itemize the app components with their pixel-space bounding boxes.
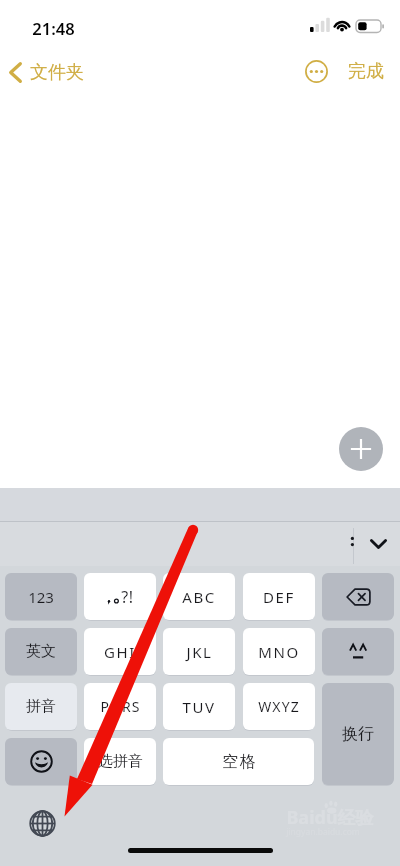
button[interactable]: PQRS <box>84 683 156 730</box>
button[interactable]: 完成 <box>348 60 384 83</box>
button[interactable]: TUV <box>163 683 235 730</box>
staticText: WXYZ <box>258 697 300 716</box>
staticText: 123 <box>28 587 54 607</box>
staticText: Baidu经验 <box>286 805 374 830</box>
staticText: DEF <box>263 587 295 607</box>
button[interactable]: WXYZ <box>243 683 315 730</box>
button[interactable]: 英文 <box>5 628 77 675</box>
button[interactable]: GHI <box>84 628 156 675</box>
button[interactable]: 123 <box>5 573 77 620</box>
button[interactable]: 选拼音 <box>84 738 156 785</box>
button[interactable]: Hide keyboard <box>358 526 398 562</box>
staticText: TUV <box>182 697 216 717</box>
button[interactable]: ?! <box>84 573 156 620</box>
staticText: 完成 <box>348 60 384 83</box>
button[interactable]: ABC <box>163 573 235 620</box>
button[interactable]: 文件夹 <box>9 52 84 92</box>
staticText: 文件夹 <box>30 61 84 84</box>
staticText: ABC <box>182 587 216 607</box>
button[interactable]: More options <box>299 54 334 89</box>
staticText: MNO <box>258 642 300 662</box>
staticText: 拼音 <box>26 697 56 716</box>
button[interactable]: Kaomoji <box>322 628 394 675</box>
other: Emoji <box>5 738 77 785</box>
button[interactable]: DEF <box>243 573 315 620</box>
button[interactable]: 拼音 <box>5 683 77 730</box>
button[interactable]: Emoji <box>5 738 77 785</box>
staticText: JKL <box>186 642 213 662</box>
button[interactable]: MNO <box>243 628 315 675</box>
staticText: PQRS <box>100 697 141 716</box>
staticText: 换行 <box>342 724 374 744</box>
other: Kaomoji <box>322 628 394 675</box>
staticText: 21:48 <box>32 17 75 39</box>
staticText: 选拼音 <box>98 752 143 771</box>
button[interactable]: 换行 <box>322 683 394 785</box>
staticText: ?! <box>121 586 134 608</box>
staticText: GHI <box>104 642 136 662</box>
staticText: 空格 <box>221 752 257 772</box>
button[interactable]: Switch input language <box>24 805 60 841</box>
staticText: 英文 <box>26 642 56 661</box>
other: Delete <box>322 573 394 620</box>
button[interactable]: Delete <box>322 573 394 620</box>
button[interactable]: Add <box>339 427 383 471</box>
button[interactable]: JKL <box>163 628 235 675</box>
button[interactable]: 空格 <box>163 738 314 785</box>
